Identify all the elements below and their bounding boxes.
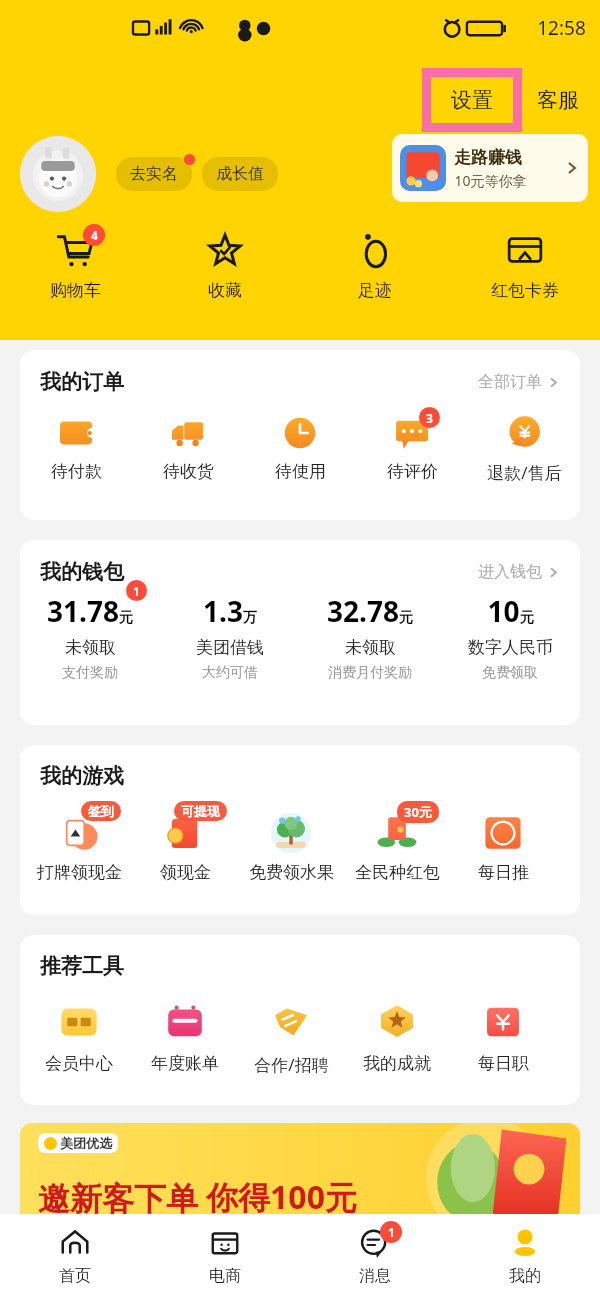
staticText: 未领取	[345, 637, 396, 658]
staticText: 可提现	[181, 803, 220, 819]
staticText: 签到	[88, 803, 114, 819]
staticText: 待付款	[51, 461, 102, 482]
staticText: 成长值	[216, 164, 264, 184]
staticText: 待收货	[163, 461, 214, 482]
staticText: 领现金	[160, 862, 211, 883]
button[interactable]: 成长值	[202, 157, 278, 191]
button[interactable]: 会员中心	[26, 1001, 132, 1074]
staticText: 10	[487, 592, 520, 630]
staticText: 每日推	[478, 862, 529, 883]
staticText: 美团优选	[60, 1135, 112, 1151]
button[interactable]: 我的	[450, 1226, 600, 1286]
button[interactable]: 待使用	[244, 414, 356, 482]
button[interactable]: 签到	[26, 803, 132, 883]
button[interactable]: 每日职	[450, 1001, 556, 1074]
staticText: 待使用	[275, 461, 326, 482]
staticText: 红包卡券	[491, 280, 559, 301]
staticText: 1.3	[203, 592, 243, 630]
button[interactable]: 10	[440, 592, 580, 682]
staticText: 我的	[509, 1266, 541, 1286]
staticText: 3	[426, 410, 433, 426]
button[interactable]: 30元	[344, 803, 450, 883]
button[interactable]: 退款/售后	[468, 414, 580, 484]
staticText: 未领取	[65, 637, 116, 658]
staticText: 去实名	[130, 164, 178, 184]
button[interactable]: 红包卡券	[450, 228, 600, 301]
staticText: 购物车	[50, 280, 101, 301]
button[interactable]: 合作/招聘	[238, 1001, 344, 1076]
button[interactable]: 每日推	[450, 803, 556, 883]
button[interactable]: 足迹	[300, 228, 450, 301]
staticText: 客服	[537, 87, 579, 113]
staticText: 全民种红包	[355, 862, 440, 883]
staticText: 待评价	[387, 461, 438, 482]
button[interactable]: 首页	[0, 1226, 150, 1286]
button[interactable]: 全部订单	[474, 368, 564, 396]
button[interactable]: 待付款	[20, 414, 132, 482]
staticText: 退款/售后	[487, 461, 562, 484]
button[interactable]: 31.78	[20, 592, 160, 682]
button[interactable]: 3	[356, 414, 468, 482]
staticText: 消息	[359, 1266, 391, 1286]
staticText: 32.78	[327, 592, 399, 630]
button[interactable]: 设置	[431, 77, 513, 123]
staticText: 我的游戏	[40, 763, 124, 789]
staticText: 进入钱包	[478, 562, 542, 582]
button[interactable]: 客服	[524, 68, 592, 132]
button[interactable]: 1	[300, 1226, 450, 1286]
staticText: 我的订单	[40, 369, 124, 395]
staticText: 推荐工具	[40, 953, 124, 979]
button[interactable]: 32.78	[300, 592, 440, 682]
staticText: 年度账单	[151, 1053, 219, 1074]
staticText: 收藏	[208, 280, 242, 301]
staticText: 合作/招聘	[254, 1053, 329, 1076]
button[interactable]: 待收货	[132, 414, 244, 482]
button[interactable]: 我的成就	[344, 1001, 450, 1074]
staticText: 首页	[59, 1266, 91, 1286]
button[interactable]: 免费领水果	[238, 803, 344, 883]
staticText: 邀新客下单	[38, 1179, 198, 1219]
staticText: 支付奖励	[62, 664, 118, 682]
staticText: 大约可借	[202, 664, 258, 682]
button[interactable]: 美团优选	[20, 1123, 580, 1233]
button[interactable]: 去实名	[116, 157, 192, 191]
staticText: 12:58	[537, 15, 586, 41]
staticText: 10元等你拿	[454, 171, 527, 190]
button[interactable]: 4	[0, 228, 150, 301]
button[interactable]: 进入钱包	[474, 558, 564, 586]
button[interactable]	[20, 136, 96, 212]
staticText: 走路赚钱	[454, 147, 522, 168]
button[interactable]: 收藏	[150, 228, 300, 301]
staticText: 元	[520, 609, 534, 627]
staticText: 免费领取	[482, 664, 538, 682]
button[interactable]: 可提现	[132, 803, 238, 883]
staticText: 数字人民币	[468, 637, 553, 658]
staticText: 我的成就	[363, 1053, 431, 1074]
staticText: 全部订单	[478, 372, 542, 392]
staticText: 免费领水果	[249, 862, 334, 883]
staticText: 元	[119, 609, 133, 627]
button[interactable]: 电商	[150, 1226, 300, 1286]
staticText: 你得100元	[206, 1175, 357, 1219]
staticText: 元	[399, 609, 413, 627]
button[interactable]: 1.3	[160, 592, 300, 682]
staticText: 1	[133, 583, 140, 599]
staticText: 设置	[451, 87, 493, 113]
staticText: 万	[243, 609, 257, 627]
staticText: 每日职	[478, 1053, 529, 1074]
button[interactable]: 年度账单	[132, 1001, 238, 1074]
staticText: 消费月付奖励	[328, 664, 412, 682]
staticText: 打牌领现金	[37, 862, 122, 883]
staticText: 我的钱包	[40, 559, 124, 585]
staticText: 30元	[404, 803, 432, 821]
staticText: 会员中心	[45, 1053, 113, 1074]
staticText: 美团借钱	[196, 637, 264, 658]
staticText: 31.78	[47, 592, 119, 630]
staticText: 1	[388, 1224, 395, 1240]
staticText: 4	[91, 227, 98, 243]
button[interactable]: 走路赚钱	[392, 134, 588, 202]
staticText: 电商	[209, 1266, 241, 1286]
staticText: 足迹	[358, 280, 392, 301]
